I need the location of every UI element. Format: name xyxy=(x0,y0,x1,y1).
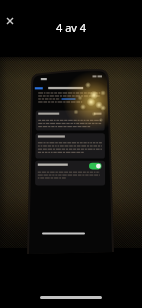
button[interactable]: Close xyxy=(0,8,23,34)
staticText: 4 av 4 xyxy=(56,20,87,35)
